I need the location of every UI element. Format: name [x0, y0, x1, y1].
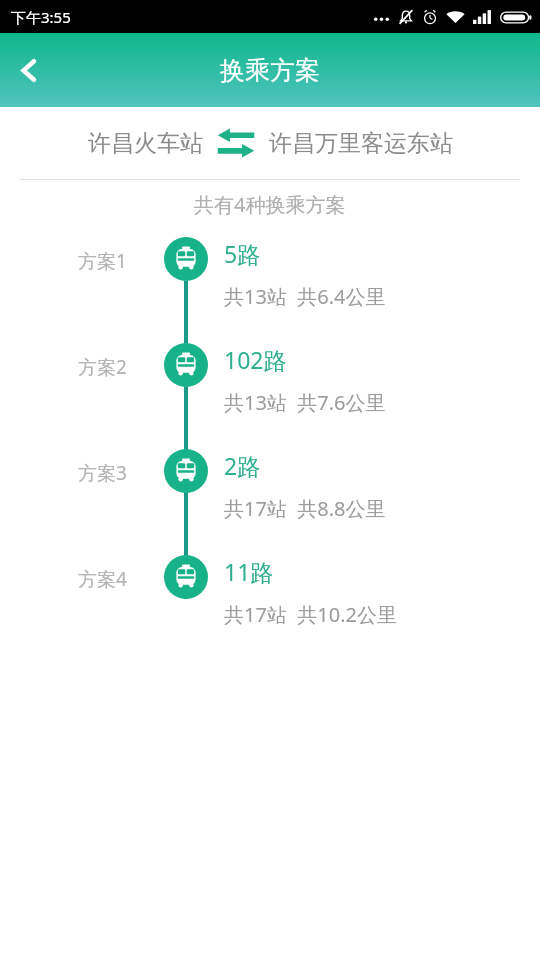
staticText: 下午3:55 [11, 7, 71, 27]
staticText: 共17站 共10.2公里 [224, 601, 397, 628]
button[interactable]: 许昌火车站 [0, 107, 540, 179]
staticText: 换乘方案 [220, 55, 320, 86]
staticText: 方案2 [78, 354, 127, 380]
button[interactable]: 方案2 [0, 334, 540, 440]
staticText: 2路 [224, 450, 261, 481]
staticText: 方案3 [78, 460, 127, 486]
button[interactable]: Back [0, 42, 56, 98]
staticText: 5路 [224, 238, 261, 269]
staticText: 方案4 [78, 566, 127, 592]
staticText: 11路 [224, 556, 274, 587]
staticText: 许昌火车站 [88, 129, 203, 158]
button[interactable]: 方案3 [0, 440, 540, 546]
staticText: 方案1 [78, 248, 127, 274]
staticText: 共有4种换乘方案 [194, 191, 346, 218]
button[interactable]: 方案1 [0, 228, 540, 334]
staticText: 102路 [224, 344, 287, 375]
staticText: 共13站 共7.6公里 [224, 389, 386, 416]
staticText: 许昌万里客运东站 [269, 129, 453, 158]
staticText: 共13站 共6.4公里 [224, 283, 386, 310]
button[interactable]: 方案4 [0, 546, 540, 652]
staticText: 共17站 共8.8公里 [224, 495, 386, 522]
